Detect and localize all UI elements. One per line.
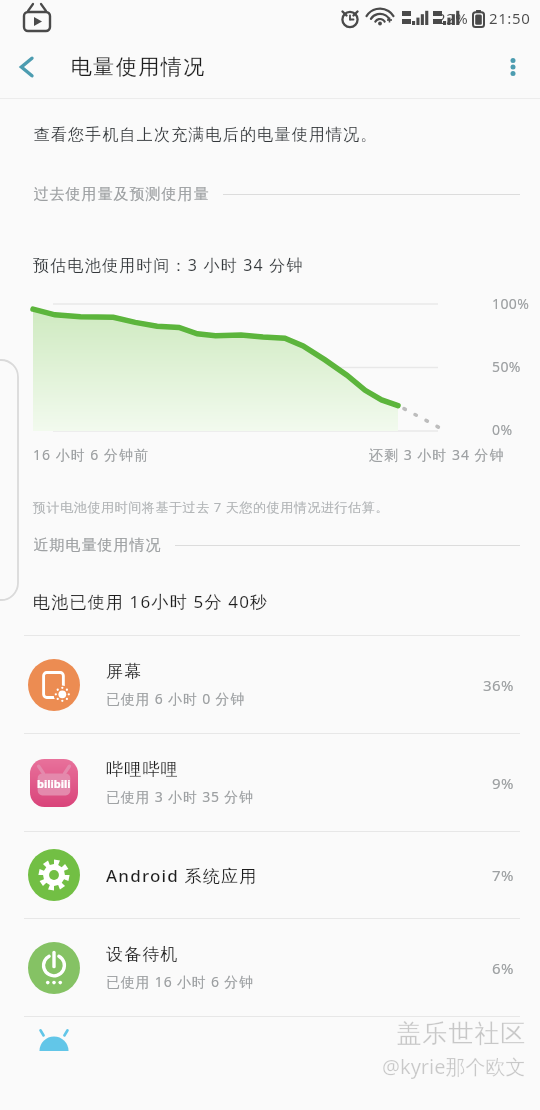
staticText: 盖乐世社区 [396,1018,526,1049]
button[interactable]: Android 系统应用 [0,832,540,918]
staticText: 16 小时 6 分钟前 [33,445,149,464]
button[interactable]: 设备待机 [0,919,540,1016]
button[interactable]: Back [0,39,56,95]
staticText: 设备待机 [106,944,179,965]
staticText: 9% [492,773,514,793]
staticText: 50% [492,357,521,376]
staticText: 7% [492,865,514,885]
staticText: 0% [492,420,513,439]
staticText: 电池已使用 16小时 5分 40秒 [33,590,269,613]
staticText: 已使用 3 小时 35 分钟 [106,787,254,806]
staticText: 屏幕 [106,661,143,682]
staticText: 过去使用量及预测使用量 [33,185,209,204]
staticText: 还剩 3 小时 34 分钟 [369,445,505,464]
staticText: bilibili [37,776,71,791]
button[interactable]: 屏幕 [0,636,540,733]
staticText: 查看您手机自上次充满电后的电量使用情况。 [33,125,377,145]
staticText: 21:50 [489,8,531,28]
button[interactable] [0,1017,540,1057]
staticText: 已使用 16 小时 6 分钟 [106,972,254,991]
staticText: 已使用 6 小时 0 分钟 [106,689,245,708]
staticText: 预计电池使用时间将基于过去 7 天您的使用情况进行估算。 [33,498,389,516]
staticText: 预估电池使用时间：3 小时 34 分钟 [33,254,304,276]
staticText: 6% [492,958,514,978]
staticText: 电量使用情况 [70,54,205,80]
staticText: 哔哩哔哩 [106,759,179,780]
staticText: @kyrie那个欧文 [382,1053,526,1080]
staticText: Android 系统应用 [106,864,258,887]
button[interactable]: bilibili [0,734,540,831]
button[interactable]: More options [486,40,540,94]
staticText: 近期电量使用情况 [33,536,161,555]
staticText: 100% [492,294,530,313]
staticText: 36% [483,675,514,695]
staticText: 22% [437,8,469,28]
